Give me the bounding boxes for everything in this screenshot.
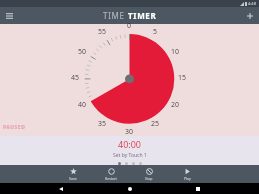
staticText: 10 [171,47,180,57]
button[interactable]: Save [54,165,92,183]
staticText: 25 [151,119,160,129]
staticText: 4:48 [248,1,256,6]
staticText: 40 [78,100,87,110]
staticText: Restart [105,176,117,181]
staticText: 5 [153,27,158,37]
button[interactable]: Home [123,183,137,194]
staticText: 55 [98,27,107,37]
button[interactable]: Back [54,183,68,194]
staticText: 30 [125,127,134,137]
staticText: Save [69,176,77,181]
staticText: 0 [127,21,132,31]
button[interactable]: Timer dial, 40 minutes [0,24,259,136]
staticText: 50 [78,47,87,57]
staticText: TIME [103,10,128,21]
staticText: 35 [98,119,107,129]
staticText: 20 [171,100,180,110]
staticText: 45 [71,73,80,83]
button[interactable]: Stop [130,165,168,183]
staticText: 15 [178,73,187,83]
button[interactable]: Menu [3,9,16,22]
button[interactable]: Add timer [243,9,256,22]
button[interactable]: Recent apps [191,183,205,194]
staticText: Set by Touch 1 [113,152,147,159]
staticText: Play [184,176,191,181]
button[interactable]: Restart [92,165,130,183]
staticText: TIMER [128,10,157,21]
button[interactable]: Play [168,165,206,183]
staticText: 40:00 [118,138,142,150]
staticText: PAUSED [3,124,26,131]
staticText: Stop [145,176,153,181]
